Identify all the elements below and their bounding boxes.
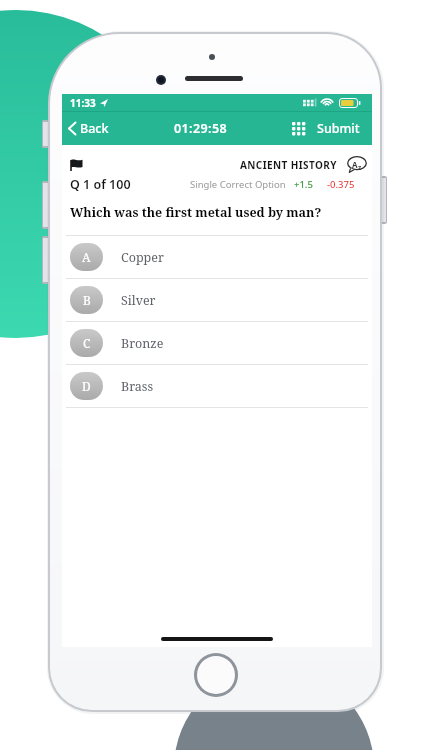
button[interactable]: B: [62, 279, 372, 321]
staticText: A: [352, 159, 358, 170]
staticText: -0.375: [327, 178, 355, 191]
staticText: Q 1 of 100: [70, 176, 131, 193]
staticText: +1.5: [294, 178, 313, 191]
staticText: Bronze: [121, 335, 164, 352]
staticText: Brass: [121, 378, 154, 395]
staticText: 11:33: [70, 96, 96, 110]
button[interactable]: Submit: [315, 118, 362, 139]
staticText: ANCIENT HISTORY: [240, 158, 337, 172]
button[interactable]: [197, 656, 235, 694]
staticText: Copper: [121, 249, 164, 266]
staticText: z: [358, 163, 362, 172]
staticText: Silver: [121, 292, 156, 309]
staticText: C: [83, 335, 91, 351]
staticText: Single Correct Option: [190, 178, 286, 191]
staticText: A: [82, 249, 91, 265]
staticText: Submit: [317, 120, 360, 137]
staticText: 01:29:58: [174, 120, 228, 137]
button[interactable]: C: [62, 322, 372, 364]
button[interactable]: Back: [66, 116, 111, 141]
staticText: Which was the first metal used by man?: [70, 204, 322, 221]
staticText: Back: [80, 120, 109, 137]
staticText: B: [83, 292, 91, 308]
button[interactable]: [292, 122, 306, 136]
button[interactable]: [70, 159, 83, 171]
button[interactable]: A: [62, 236, 372, 278]
button[interactable]: A: [347, 156, 367, 174]
staticText: D: [82, 378, 91, 394]
button[interactable]: D: [62, 365, 372, 407]
